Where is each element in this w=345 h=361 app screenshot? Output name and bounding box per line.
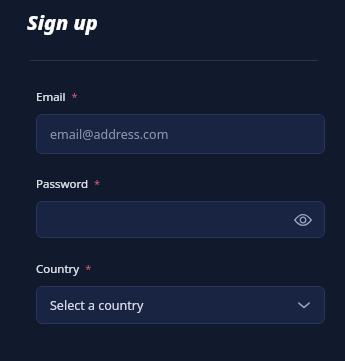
staticText: email@address.com — [50, 126, 169, 143]
staticText: Select a country — [50, 297, 144, 314]
staticText: Password * — [36, 176, 101, 192]
button[interactable]: email@address.com — [36, 114, 325, 154]
button[interactable]: Show password — [291, 208, 315, 232]
button[interactable]: Select a country — [36, 286, 325, 324]
staticText: Sign up — [27, 9, 98, 36]
button[interactable]: Show password — [36, 201, 325, 238]
staticText: Country * — [36, 261, 92, 277]
staticText: Email * — [36, 89, 78, 105]
